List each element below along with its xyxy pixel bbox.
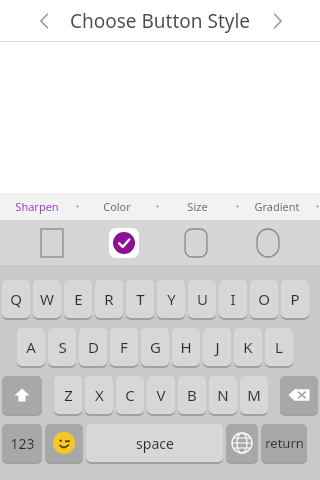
button[interactable]: N [209, 376, 237, 416]
staticText: space [136, 434, 174, 453]
button[interactable]: I [219, 280, 247, 320]
staticText: N [217, 385, 229, 405]
staticText: J [215, 337, 220, 357]
button[interactable]: B [178, 376, 206, 416]
button[interactable]: V [147, 376, 175, 416]
staticText: Gradient [254, 199, 300, 214]
staticText: R [104, 289, 114, 309]
staticText: Q [10, 289, 22, 309]
button[interactable]: Shift [2, 376, 42, 416]
button[interactable]: G [141, 328, 169, 368]
staticText: A [26, 337, 36, 357]
button[interactable]: Q [2, 280, 30, 320]
staticText: P [290, 289, 300, 309]
staticText: Choose Button Style [70, 8, 251, 34]
button[interactable]: Color [80, 193, 154, 220]
staticText: B [187, 385, 197, 405]
button[interactable]: J [203, 328, 231, 368]
button[interactable]: Previous [28, 4, 62, 38]
staticText: 123 [10, 434, 35, 453]
button[interactable]: S [48, 328, 76, 368]
button[interactable]: K [234, 328, 262, 368]
button[interactable]: 123 [2, 424, 42, 464]
button[interactable]: Emoji [45, 424, 83, 464]
staticText: V [156, 385, 166, 405]
button[interactable]: Y [157, 280, 185, 320]
button[interactable]: space [86, 424, 223, 464]
staticText: Y [167, 289, 176, 309]
button[interactable]: F [110, 328, 138, 368]
button[interactable]: Oval style [250, 225, 286, 261]
button[interactable]: Rounded style [178, 225, 214, 261]
button[interactable]: M [240, 376, 268, 416]
button[interactable]: Switch language [226, 424, 258, 464]
button[interactable]: U [188, 280, 216, 320]
button[interactable]: Sharpen [0, 193, 74, 220]
staticText: O [258, 289, 270, 309]
button[interactable]: Size [160, 193, 234, 220]
button[interactable]: T [126, 280, 154, 320]
staticText: X [95, 385, 104, 405]
button[interactable]: Selected style [106, 225, 142, 261]
staticText: W [40, 289, 54, 309]
staticText: Z [64, 385, 73, 405]
button[interactable]: A [17, 328, 45, 368]
staticText: T [136, 289, 145, 309]
staticText: U [197, 289, 208, 309]
staticText: I [230, 289, 236, 309]
staticText: K [243, 337, 253, 357]
staticText: D [88, 337, 99, 357]
button[interactable]: W [33, 280, 61, 320]
button[interactable]: R [95, 280, 123, 320]
staticText: Color [103, 199, 131, 214]
button[interactable]: C [116, 376, 144, 416]
staticText: G [150, 337, 161, 357]
staticText: Size [187, 199, 208, 214]
button[interactable]: O [250, 280, 278, 320]
staticText: C [125, 385, 135, 405]
button[interactable]: Gradient [240, 193, 314, 220]
staticText: F [120, 337, 128, 357]
staticText: E [74, 289, 83, 309]
button[interactable]: Next [260, 4, 294, 38]
button[interactable]: D [79, 328, 107, 368]
button[interactable]: Backspace [280, 376, 318, 416]
button[interactable]: Square style [34, 225, 70, 261]
staticText: Sharpen [15, 199, 59, 214]
staticText: L [275, 337, 283, 357]
button[interactable]: P [281, 280, 309, 320]
button[interactable]: L [265, 328, 293, 368]
staticText: S [58, 337, 67, 357]
button[interactable]: E [64, 280, 92, 320]
button[interactable]: H [172, 328, 200, 368]
staticText: return [265, 434, 304, 452]
button[interactable]: Z [54, 376, 82, 416]
button[interactable]: X [85, 376, 113, 416]
staticText: M [247, 385, 261, 405]
staticText: H [180, 337, 192, 357]
button[interactable]: return [261, 424, 307, 464]
